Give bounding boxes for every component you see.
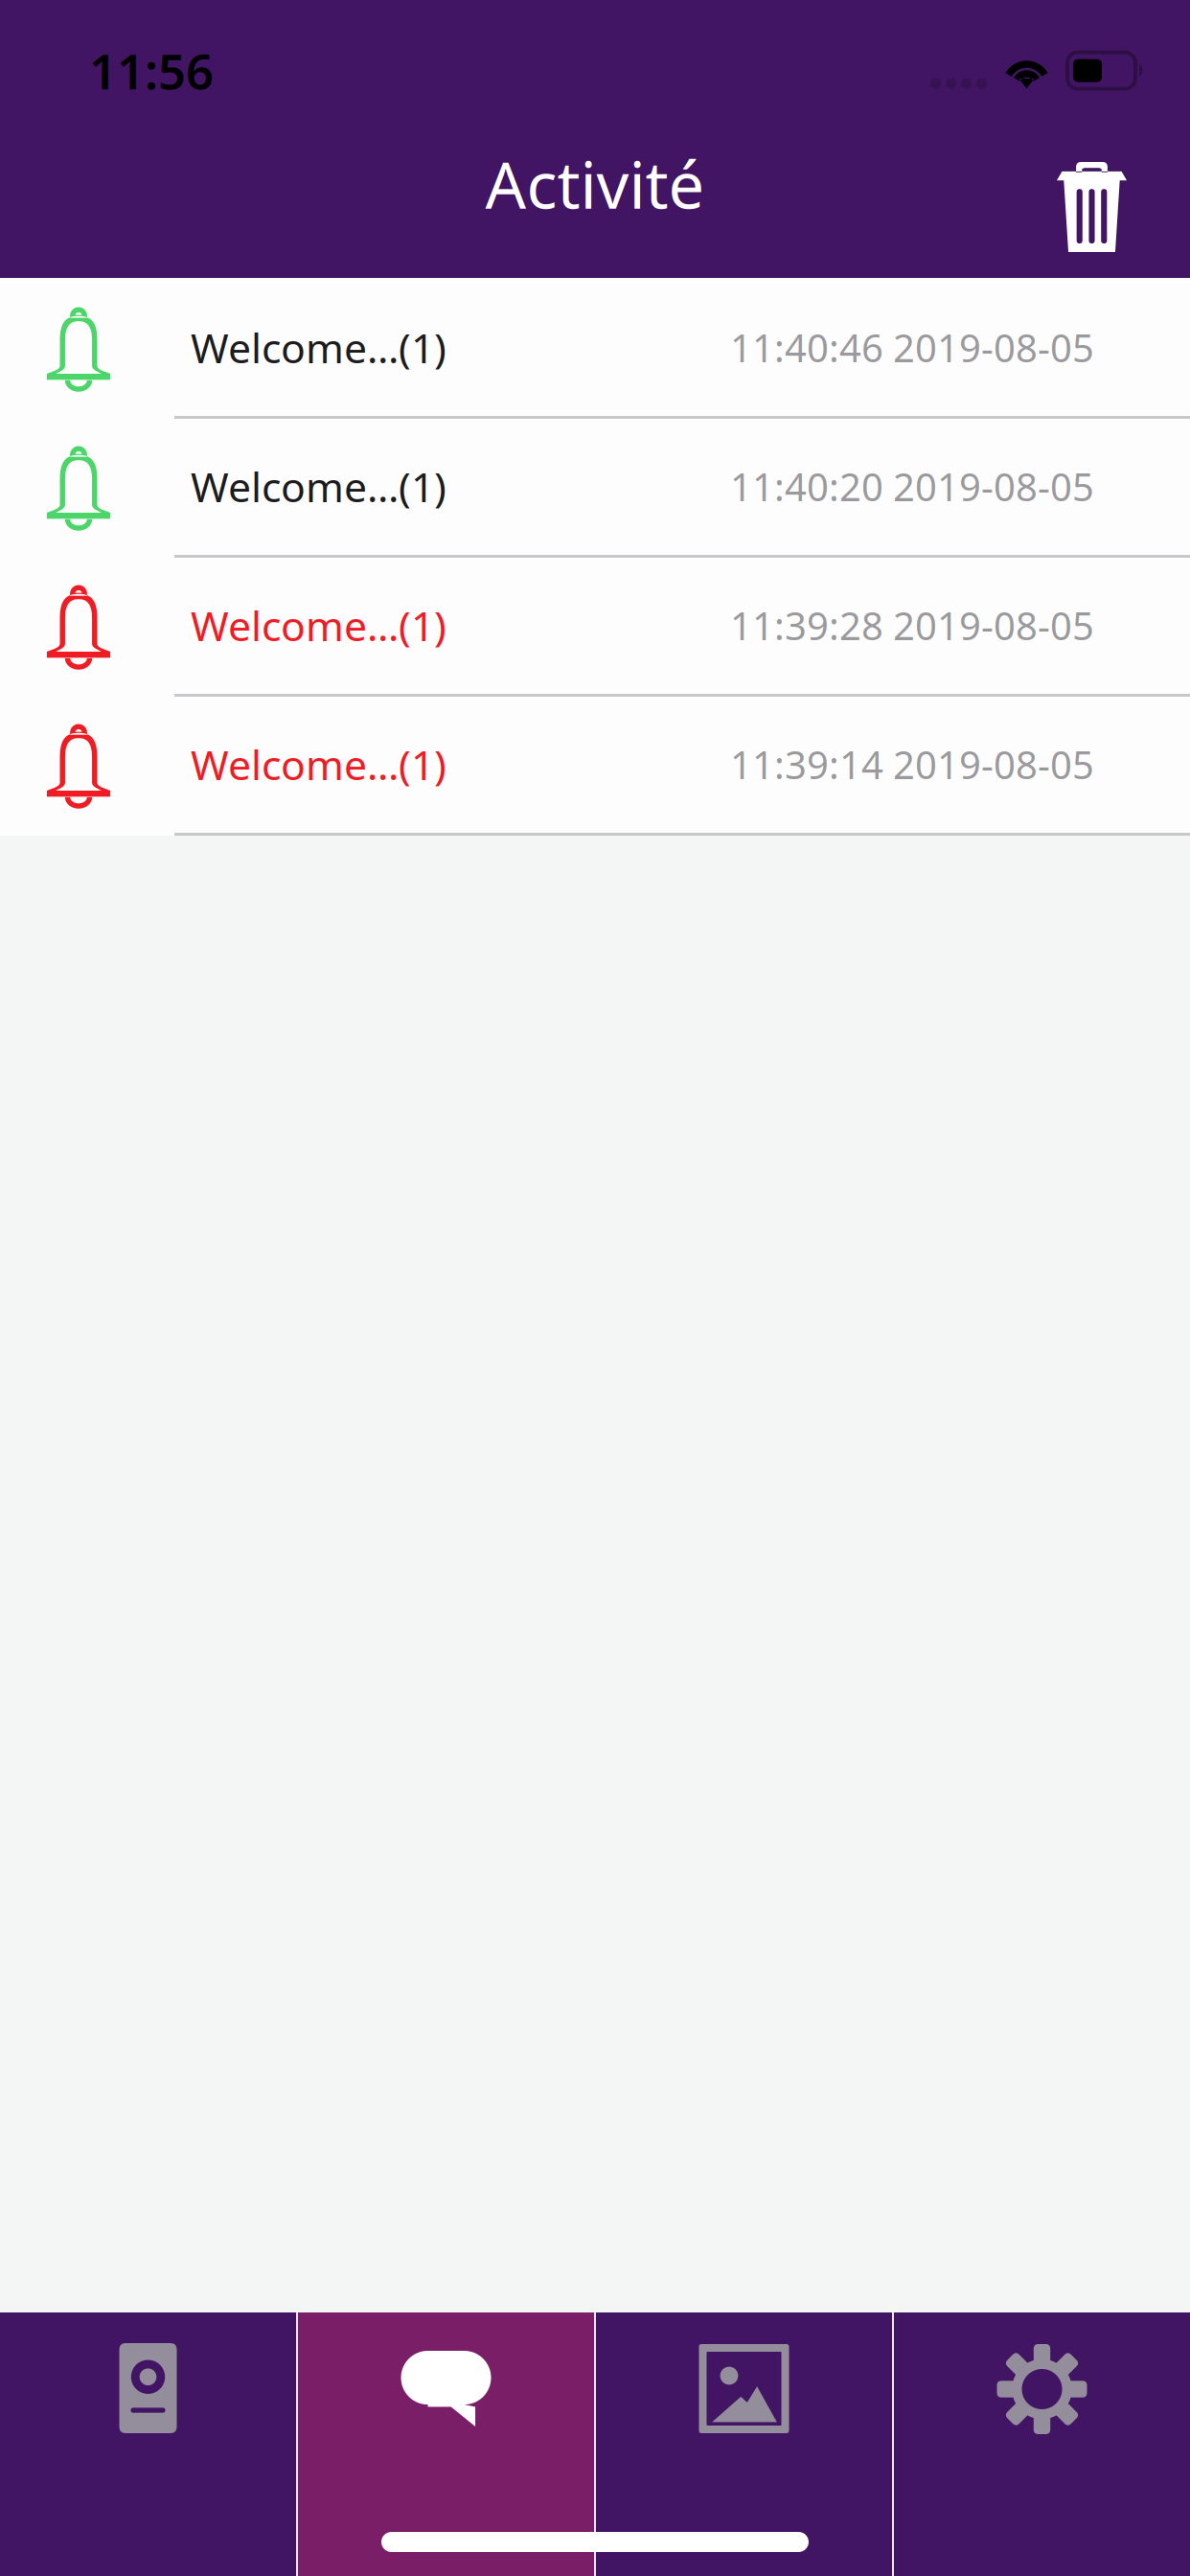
button[interactable]: Welcome...(1) xyxy=(0,556,1190,695)
staticText: 11:40:46 2019-08-05 xyxy=(730,322,1094,373)
staticText: Welcome...(1) xyxy=(191,737,446,791)
staticText: Activité xyxy=(485,142,705,226)
staticText: Welcome...(1) xyxy=(191,320,446,375)
button[interactable]: Welcome...(1) xyxy=(0,695,1190,834)
staticText: Welcome...(1) xyxy=(191,459,446,514)
button[interactable]: Activité xyxy=(298,2312,594,2576)
button[interactable]: Welcome...(1) xyxy=(0,417,1190,556)
staticText: 11:56 xyxy=(89,38,214,103)
staticText: Welcome...(1) xyxy=(191,598,446,653)
button[interactable]: Réglages xyxy=(894,2312,1190,2576)
staticText: 11:39:28 2019-08-05 xyxy=(730,600,1094,651)
button[interactable]: Portier xyxy=(0,2312,296,2576)
button[interactable]: Welcome...(1) xyxy=(0,278,1190,417)
staticText: 11:39:14 2019-08-05 xyxy=(730,739,1094,790)
staticText: 11:40:20 2019-08-05 xyxy=(730,461,1094,512)
button[interactable]: Photos xyxy=(596,2312,892,2576)
button[interactable]: Supprimer xyxy=(1018,107,1190,261)
